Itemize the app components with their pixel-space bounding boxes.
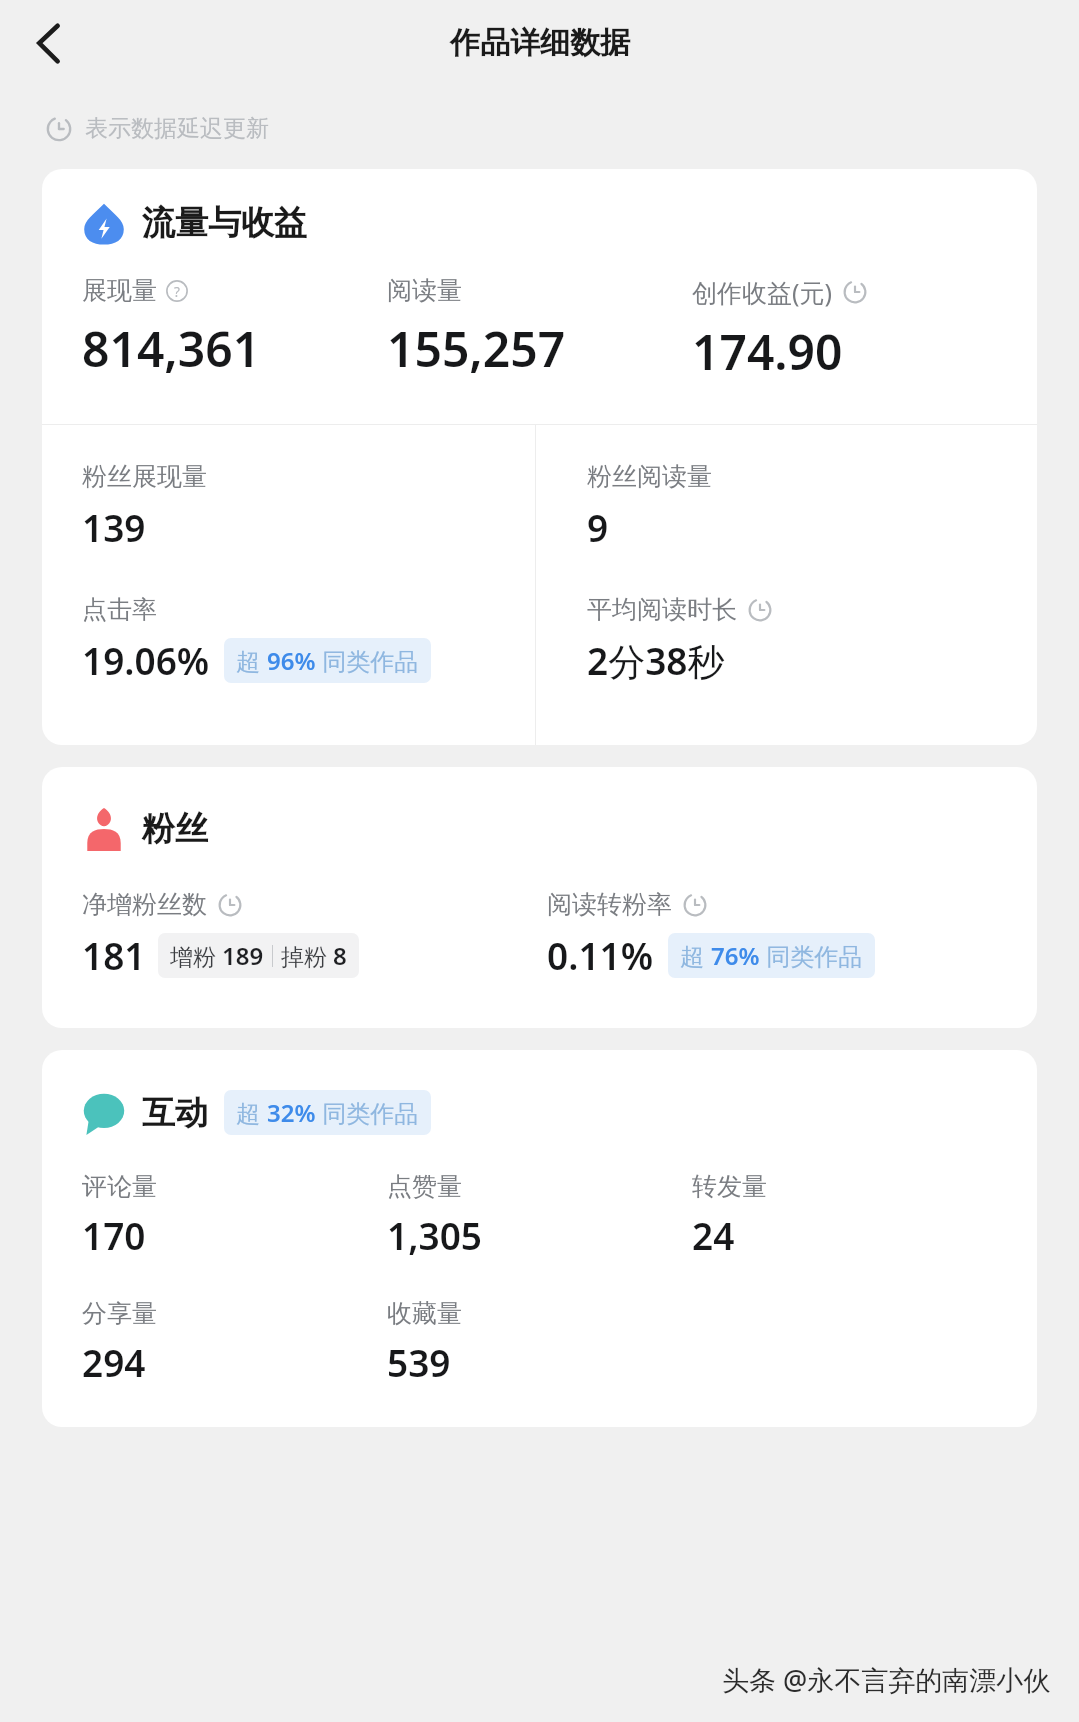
staticText: 阅读转粉率: [547, 889, 672, 920]
staticText: 平均阅读时长: [587, 594, 737, 625]
staticText: 24: [692, 1210, 735, 1260]
staticText: 155,257: [387, 316, 566, 381]
staticText: 294: [82, 1337, 146, 1387]
staticText: 互动: [142, 1092, 208, 1134]
staticText: 创作收益(元): [692, 275, 833, 309]
button[interactable]: 互动: [42, 1050, 1037, 1427]
staticText: 9: [587, 502, 609, 552]
button[interactable]: 流量与收益: [42, 169, 1037, 745]
staticText: 粉丝展现量: [82, 461, 207, 492]
staticText: 181: [82, 930, 146, 980]
staticText: 8: [333, 939, 347, 972]
staticText: 超: [236, 644, 267, 677]
staticText: 19.06%: [82, 635, 210, 685]
staticText: 539: [387, 1337, 451, 1387]
staticText: 96%: [267, 644, 316, 677]
staticText: 头条 @永不言弃的南漂小伙: [722, 1661, 1051, 1698]
button[interactable]: 粉丝: [42, 767, 1037, 1028]
staticText: ?: [174, 282, 180, 301]
button[interactable]: 增粉: [158, 933, 359, 978]
staticText: 1,305: [387, 1210, 482, 1260]
staticText: 189: [222, 939, 264, 972]
staticText: 814,361: [82, 316, 261, 381]
staticText: 点击率: [82, 594, 157, 625]
staticText: 增粉: [170, 940, 222, 971]
staticText: 174.90: [692, 319, 843, 384]
staticText: 170: [82, 1210, 146, 1260]
staticText: 评论量: [82, 1171, 157, 1202]
staticText: 76%: [711, 939, 760, 972]
staticText: 转发量: [692, 1171, 767, 1202]
staticText: 分享量: [82, 1298, 157, 1329]
staticText: 超: [236, 1096, 267, 1129]
staticText: 掉粉: [281, 940, 333, 971]
staticText: 收藏量: [387, 1298, 462, 1329]
button[interactable]: 超: [668, 933, 875, 978]
staticText: 净增粉丝数: [82, 889, 207, 920]
staticText: 139: [82, 502, 146, 552]
staticText: 流量与收益: [142, 202, 307, 244]
staticText: 0.11%: [547, 930, 654, 980]
staticText: 表示数据延迟更新: [85, 114, 269, 143]
staticText: 阅读量: [387, 275, 462, 306]
staticText: 同类作品: [316, 644, 419, 677]
staticText: 点赞量: [387, 1171, 462, 1202]
staticText: 32%: [267, 1096, 316, 1129]
button[interactable]: 超: [224, 1090, 431, 1135]
staticText: 粉丝阅读量: [587, 461, 712, 492]
button[interactable]: 超: [224, 638, 431, 683]
button[interactable]: 互动: [82, 1090, 1037, 1135]
button[interactable]: Back: [22, 16, 76, 70]
staticText: 作品详细数据: [450, 24, 630, 62]
staticText: 粉丝: [142, 808, 208, 850]
staticText: 展现量: [82, 275, 157, 306]
staticText: 同类作品: [316, 1096, 419, 1129]
staticText: 2分38秒: [587, 635, 725, 686]
staticText: 超: [680, 939, 711, 972]
staticText: 同类作品: [760, 939, 863, 972]
